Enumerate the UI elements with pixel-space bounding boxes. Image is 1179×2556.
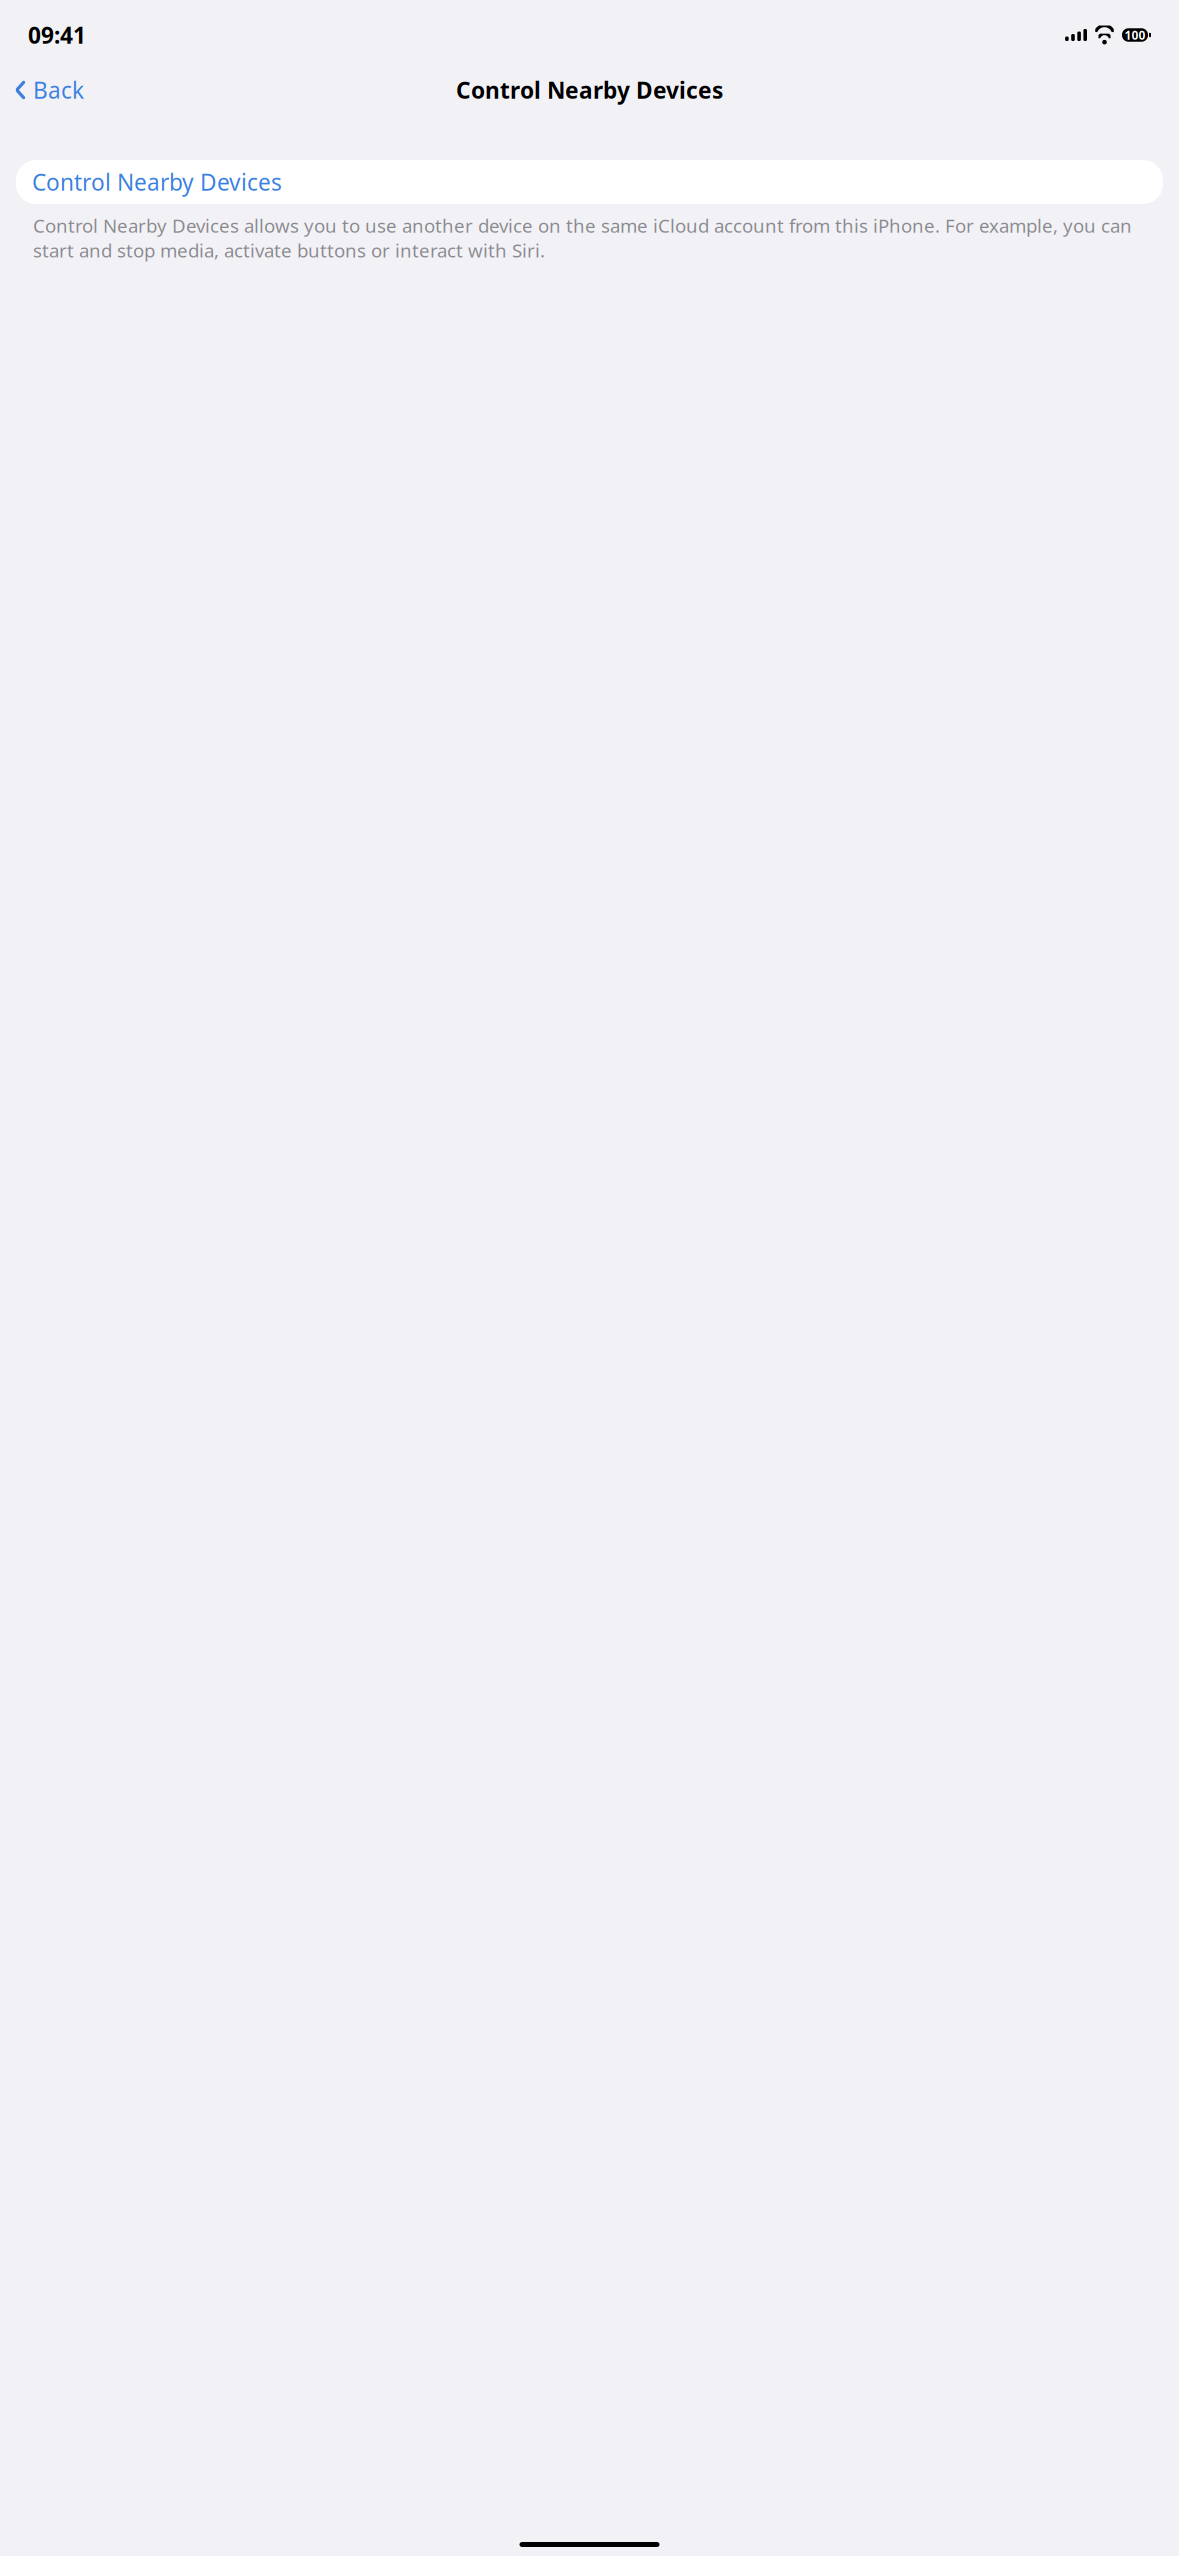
staticText: 100 (1124, 27, 1145, 43)
staticText: Control Nearby Devices (32, 167, 282, 197)
button[interactable]: Back (6, 67, 92, 113)
staticText: Control Nearby Devices (456, 75, 723, 105)
button[interactable]: Control Nearby Devices (16, 160, 1163, 204)
staticText: 09:41 (28, 20, 86, 50)
staticText: Back (33, 75, 84, 105)
staticText: Control Nearby Devices allows you to use… (33, 213, 1132, 263)
